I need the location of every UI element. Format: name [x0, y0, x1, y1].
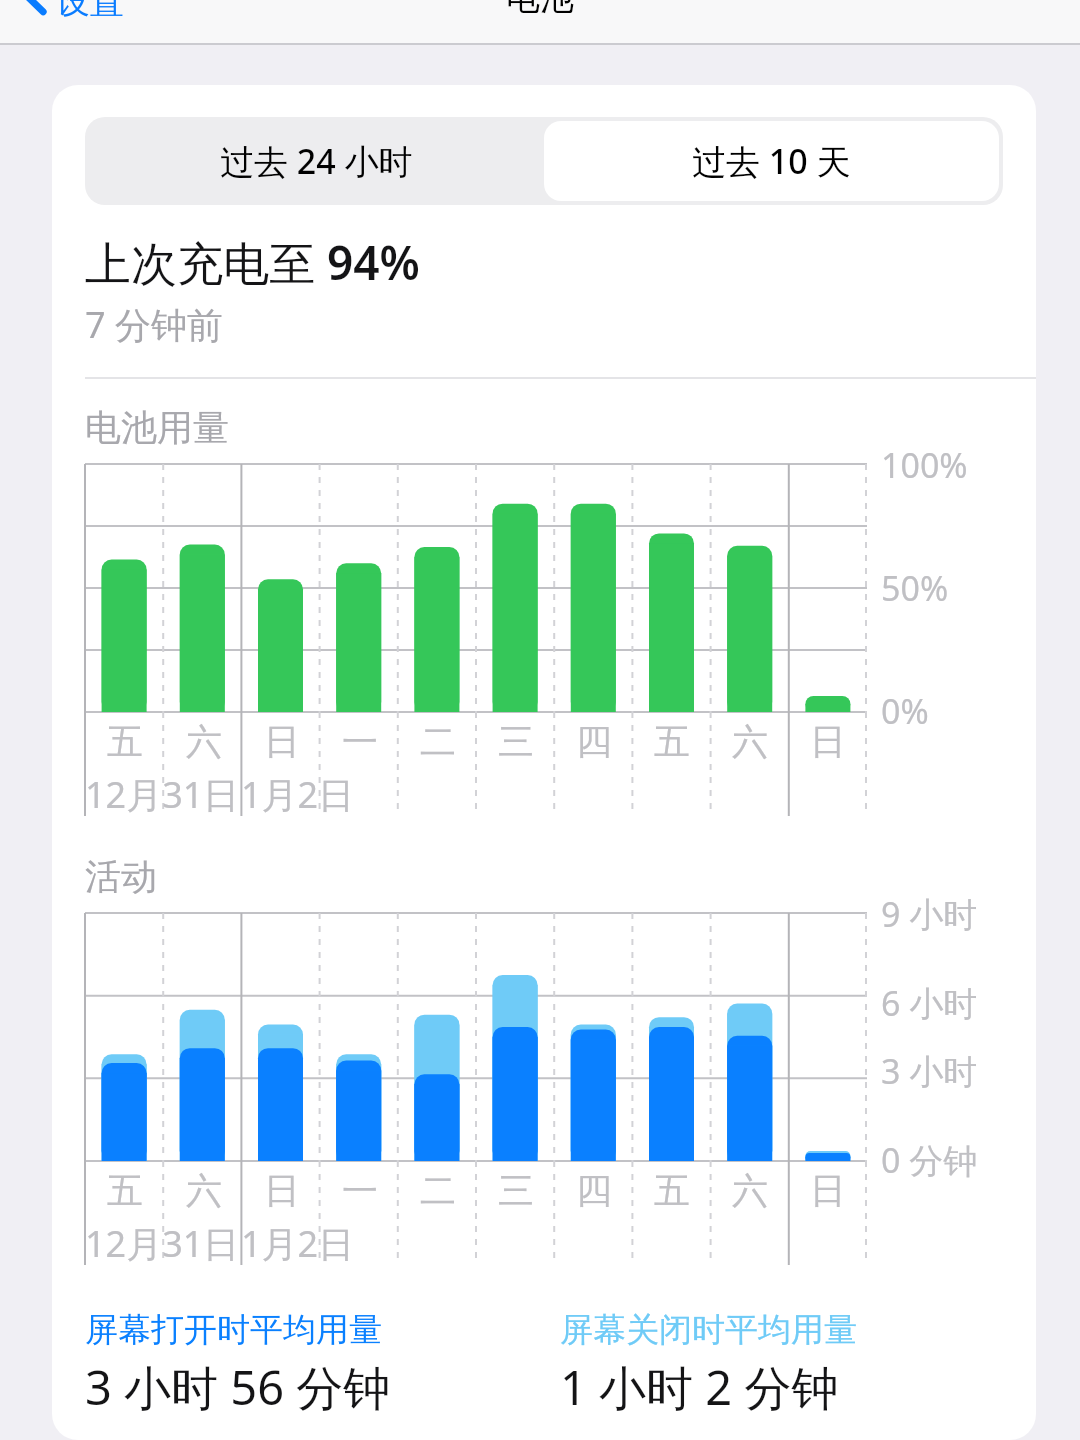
staticText: 五	[107, 719, 143, 764]
staticText: 12月31日	[85, 770, 240, 816]
staticText: 五	[654, 1168, 690, 1213]
staticText: 一	[342, 1168, 378, 1213]
staticText: 日	[810, 719, 846, 764]
staticText: 1 小时 2 分钟	[560, 1355, 839, 1419]
staticText: 3 小时	[881, 1048, 978, 1094]
staticText: 屏幕关闭时平均用量	[560, 1309, 857, 1351]
staticText: 六	[186, 719, 222, 764]
staticText: 过去 24 小时	[220, 138, 413, 184]
staticText: 1月2日	[241, 770, 355, 816]
staticText: 日	[810, 1168, 846, 1213]
staticText: 二	[420, 1168, 456, 1213]
staticText: 三	[498, 719, 534, 764]
staticText: 三	[498, 1168, 534, 1213]
staticText: 3 小时 56 分钟	[85, 1355, 391, 1419]
staticText: 四	[576, 1168, 612, 1213]
staticText: 六	[732, 1168, 768, 1213]
staticText: 9 小时	[881, 891, 978, 937]
staticText: 二	[420, 719, 456, 764]
staticText: 日	[264, 1168, 300, 1213]
staticText: 上次充电至 94%	[85, 231, 420, 294]
other: 返回设置	[26, 0, 48, 17]
staticText: 五	[107, 1168, 143, 1213]
staticText: 日	[264, 719, 300, 764]
button[interactable]: 返回设置	[0, 0, 134, 21]
staticText: 0 分钟	[881, 1137, 978, 1183]
staticText: 电池用量	[85, 405, 229, 450]
staticText: 五	[654, 719, 690, 764]
staticText: 12月31日	[85, 1219, 240, 1265]
staticText: 活动	[85, 854, 157, 899]
staticText: 电池	[506, 0, 574, 19]
button[interactable]: 过去 10 天	[544, 121, 999, 201]
staticText: 六	[732, 719, 768, 764]
staticText: 0%	[881, 688, 929, 734]
staticText: 7 分钟前	[85, 300, 223, 349]
staticText: 一	[342, 719, 378, 764]
staticText: 过去 10 天	[692, 138, 851, 184]
staticText: 屏幕打开时平均用量	[85, 1309, 382, 1351]
staticText: 1月2日	[241, 1219, 355, 1265]
button[interactable]: 过去 24 小时	[89, 121, 544, 201]
staticText: 50%	[881, 565, 949, 611]
staticText: 六	[186, 1168, 222, 1213]
staticText: 设置	[56, 0, 124, 17]
staticText: 100%	[881, 442, 968, 488]
staticText: 6 小时	[881, 980, 978, 1026]
staticText: 四	[576, 719, 612, 764]
